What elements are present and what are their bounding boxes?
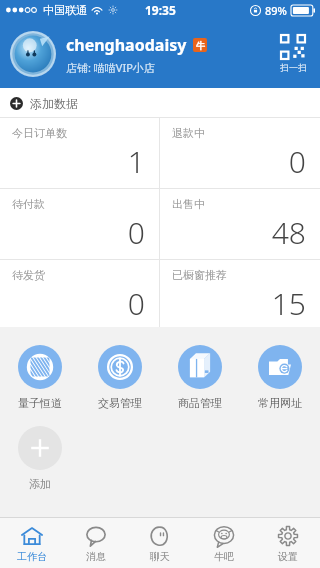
- staticText: 牛: [196, 40, 205, 51]
- staticText: 牛吧: [214, 550, 234, 563]
- staticText: 常用网址: [258, 396, 302, 410]
- button[interactable]: 消息: [64, 518, 128, 568]
- button[interactable]: 牛吧: [192, 518, 256, 568]
- staticText: 聊天: [150, 550, 170, 563]
- staticText: 0: [12, 212, 145, 253]
- button[interactable]: 扫一扫 Scan QR code: [266, 20, 320, 88]
- staticText: 出售中: [172, 197, 205, 211]
- staticText: 待付款: [12, 197, 45, 211]
- button[interactable]: 量子恒道: [0, 343, 80, 412]
- staticText: 消息: [86, 550, 106, 563]
- staticText: 店铺: 喵喵VIP小店: [66, 60, 155, 75]
- button[interactable]: Avatar: [10, 31, 56, 77]
- button[interactable]: 交易管理: [80, 343, 160, 412]
- button[interactable]: 添加 Add shortcut: [0, 426, 80, 491]
- button[interactable]: 商品管理: [160, 343, 240, 412]
- button[interactable]: 常用网址: [240, 343, 320, 412]
- button[interactable]: 设置: [256, 518, 320, 568]
- staticText: 19:35: [145, 2, 176, 18]
- staticText: 设置: [278, 550, 298, 563]
- staticText: 量子恒道: [18, 396, 62, 410]
- button[interactable]: 退款中: [160, 118, 320, 188]
- button[interactable]: 出售中: [160, 189, 320, 259]
- button[interactable]: 待发货: [0, 260, 159, 327]
- staticText: 添加: [29, 477, 51, 491]
- button[interactable]: 已橱窗推荐: [160, 260, 320, 327]
- staticText: 工作台: [17, 550, 47, 563]
- staticText: 今日订单数: [12, 126, 67, 140]
- button[interactable]: 工作台: [0, 518, 64, 568]
- button[interactable]: 添加数据: [0, 88, 320, 118]
- staticText: 1: [12, 141, 145, 182]
- staticText: 0: [172, 141, 306, 182]
- staticText: 48: [172, 212, 306, 253]
- staticText: 扫一扫: [280, 62, 307, 73]
- staticText: 交易管理: [98, 396, 142, 410]
- staticText: chenghaodaisy: [66, 34, 187, 56]
- staticText: 15: [172, 283, 306, 323]
- staticText: 0: [12, 283, 145, 323]
- staticText: 添加数据: [30, 96, 78, 111]
- staticText: 已橱窗推荐: [172, 268, 227, 282]
- button[interactable]: 待付款: [0, 189, 159, 259]
- button[interactable]: 聊天: [128, 518, 192, 568]
- staticText: 中国联通: [43, 3, 87, 17]
- staticText: 商品管理: [178, 396, 222, 410]
- staticText: 89%: [265, 3, 287, 18]
- staticText: 退款中: [172, 126, 205, 140]
- button[interactable]: 今日订单数: [0, 118, 159, 188]
- staticText: 待发货: [12, 268, 45, 282]
